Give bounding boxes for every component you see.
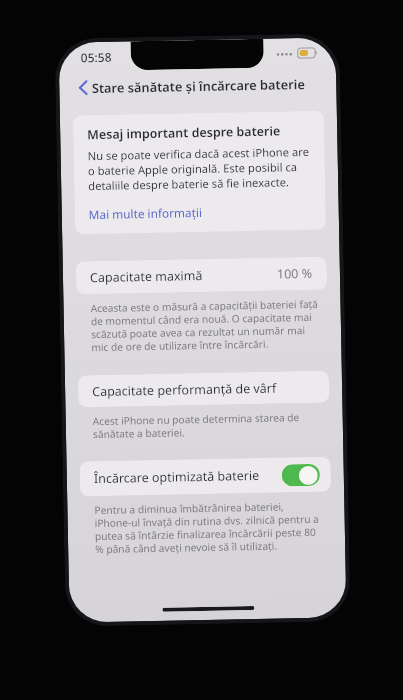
staticText: Încărcare optimizată baterie [94, 467, 260, 487]
staticText: Stare sănătate și încărcare baterie [91, 75, 305, 96]
button[interactable]: Optimised battery charging toggle [282, 464, 320, 486]
staticText: Capacitate performanță de vârf [92, 380, 277, 400]
button[interactable]: Capacitate performanță de vârf [78, 371, 329, 407]
button[interactable]: Încărcare optimizată baterie [79, 457, 331, 496]
staticText: Mesaj important despre baterie [87, 122, 281, 143]
staticText: Acest iPhone nu poate determina starea d… [93, 410, 321, 441]
button[interactable]: Mai multe informații [89, 202, 312, 222]
staticText: Nu se poate verifica dacă acest iPhone a… [87, 144, 311, 193]
staticText: 05:58 [81, 49, 112, 65]
staticText: 100 % [277, 265, 313, 283]
staticText: Aceasta este o măsură a capacității bate… [90, 297, 319, 354]
staticText: Pentru a diminua îmbătrânirea bateriei, … [94, 499, 323, 556]
staticText: Capacitate maximă [90, 267, 203, 286]
staticText: Mai multe informații [89, 204, 203, 222]
button[interactable]: Capacitate maximă [76, 257, 327, 294]
button[interactable]: Back [66, 72, 101, 102]
